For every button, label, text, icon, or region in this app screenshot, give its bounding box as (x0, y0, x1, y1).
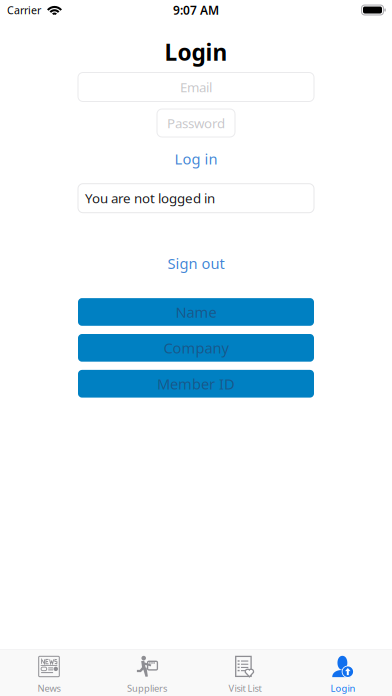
button[interactable]: Visit List (196, 649, 294, 696)
staticText: Password (167, 114, 225, 132)
button[interactable]: News (0, 649, 98, 696)
staticText: Email (180, 78, 212, 96)
staticText: Name (175, 302, 216, 322)
staticText: Company (163, 338, 228, 358)
staticText: Member ID (157, 374, 235, 393)
button[interactable]: Sign out (167, 255, 224, 272)
button[interactable]: Login (294, 649, 392, 696)
staticText: Log in (174, 149, 217, 169)
staticText: You are not logged in (85, 189, 215, 207)
button[interactable]: Name (78, 298, 314, 326)
staticText: Suppliers (127, 682, 167, 694)
staticText: Sign out (167, 253, 224, 273)
staticText: 9:07 AM (173, 2, 219, 18)
staticText: News (37, 682, 60, 694)
button[interactable]: Log in (174, 150, 217, 167)
button[interactable]: Member ID (78, 370, 314, 398)
button[interactable]: Suppliers (98, 649, 196, 696)
staticText: Login (164, 37, 227, 67)
staticText: Login (330, 682, 355, 694)
button[interactable]: Company (78, 334, 314, 362)
staticText: Carrier (7, 3, 41, 17)
staticText: Visit List (228, 682, 261, 694)
